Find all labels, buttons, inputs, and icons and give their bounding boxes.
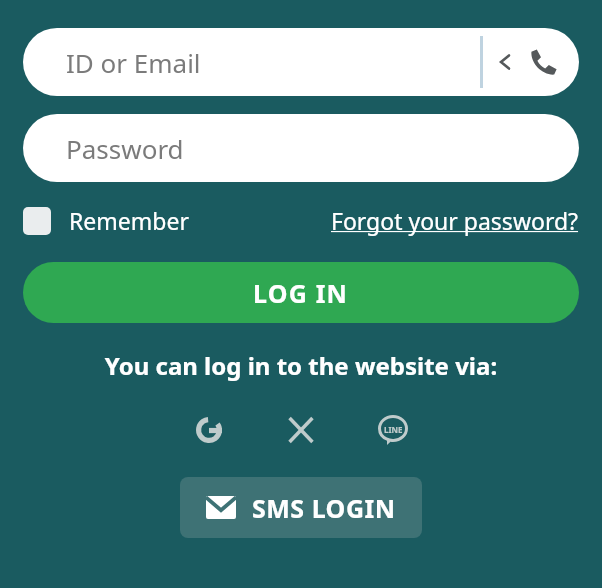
staticText: You can log in to the website via: <box>0 349 602 382</box>
button[interactable]: Forgot your password? <box>331 205 579 236</box>
button[interactable]: Password <box>23 114 579 182</box>
button[interactable]: ID or Email <box>23 28 579 96</box>
button[interactable]: LOG IN <box>23 262 579 323</box>
staticText: Remember <box>69 205 189 236</box>
staticText: LINE <box>384 424 403 435</box>
button[interactable]: Sign in with X <box>281 410 321 450</box>
other: Phone login <box>529 47 559 77</box>
staticText: ID or Email <box>66 45 201 80</box>
staticText: LOG IN <box>253 276 349 310</box>
staticText: Password <box>66 131 184 166</box>
staticText: SMS LOGIN <box>252 491 396 525</box>
staticText: Forgot your password? <box>331 205 579 236</box>
button[interactable]: Sign in with LINE <box>373 410 413 450</box>
button[interactable]: Remember <box>23 205 189 236</box>
other: Expand country code <box>495 52 515 72</box>
button[interactable]: SMS LOGIN <box>180 477 422 538</box>
button[interactable]: Sign in with Google <box>189 410 229 450</box>
